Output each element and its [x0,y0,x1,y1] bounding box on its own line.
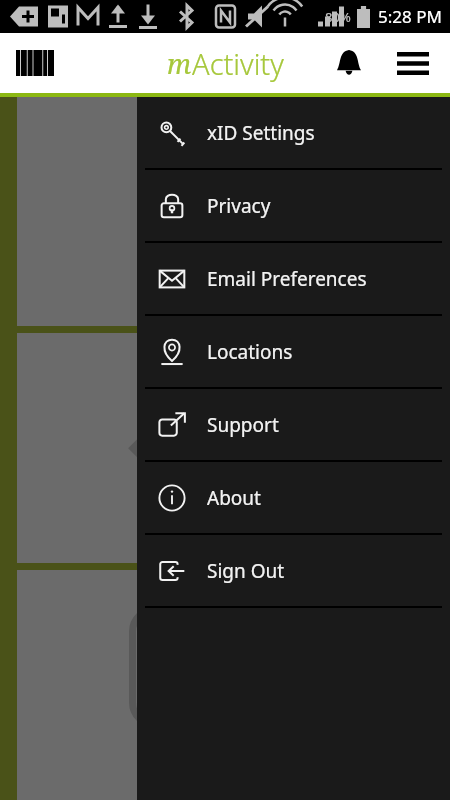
staticText: Sign Out [207,558,285,584]
button[interactable]: Privacy [137,170,450,241]
staticText: Privacy [207,193,271,219]
button[interactable]: Scan barcode [8,41,62,85]
staticText: Activity [192,44,284,83]
button[interactable]: Locations [137,316,450,387]
button[interactable]: Support [137,389,450,460]
staticText: Support [207,412,279,438]
staticText: Deals [203,527,247,549]
button[interactable]: Menu [386,36,440,90]
staticText: 80% [325,8,351,26]
button[interactable]: Email Preferences [137,243,450,314]
staticText: About [207,485,261,511]
button[interactable]: xID Settings [137,97,450,168]
button[interactable]: Deals [17,333,433,563]
staticText: 5:28 PM [378,5,442,28]
button[interactable]: Notifications [326,40,372,86]
button[interactable]: Record a Workout [17,570,433,800]
staticText: xID Settings [207,120,315,146]
staticText: Locations [207,339,293,365]
staticText: m [167,45,192,82]
button[interactable]: Sign Out [137,535,450,606]
staticText: Email Preferences [207,266,367,292]
button[interactable]: Find a Class [17,97,433,326]
button[interactable]: About [137,462,450,533]
